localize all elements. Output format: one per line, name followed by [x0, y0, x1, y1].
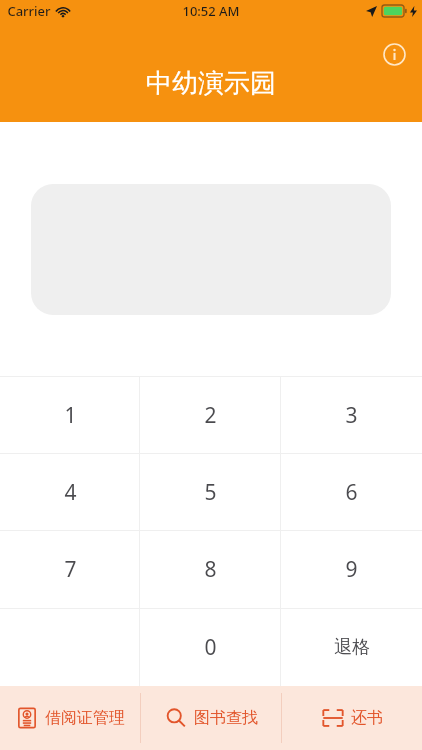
button[interactable]: 9 [281, 531, 422, 608]
staticText: 图书查找 [194, 708, 258, 728]
button[interactable]: Information [379, 39, 409, 69]
button[interactable]: 借阅证管理 [0, 686, 140, 750]
staticText: 10:52 AM [182, 2, 240, 20]
button[interactable]: 退格 [281, 609, 422, 686]
staticText: 2 [204, 401, 217, 430]
staticText: 7 [64, 555, 77, 584]
staticText: 还书 [351, 708, 383, 728]
button[interactable]: 图书查找 [141, 686, 281, 750]
button[interactable]: 0 [140, 609, 281, 686]
button[interactable]: 2 [140, 377, 281, 453]
staticText: 退格 [334, 636, 370, 659]
staticText: Carrier [7, 2, 51, 20]
button[interactable]: 6 [281, 454, 422, 530]
staticText: 中幼演示园 [146, 67, 276, 100]
staticText: 0 [204, 633, 217, 662]
button[interactable]: 5 [140, 454, 281, 530]
button[interactable]: 3 [281, 377, 422, 453]
staticText: 借阅证管理 [45, 708, 125, 728]
button[interactable]: 8 [140, 531, 281, 608]
button[interactable]: 还书 [282, 686, 422, 750]
staticText: 5 [204, 478, 217, 507]
staticText: 8 [204, 555, 217, 584]
button[interactable]: 7 [0, 531, 140, 608]
staticText: 4 [64, 478, 77, 507]
staticText: 1 [64, 401, 77, 430]
staticText: 3 [345, 401, 358, 430]
staticText: 9 [345, 555, 358, 584]
staticText: 6 [345, 478, 358, 507]
button[interactable]: 1 [0, 377, 140, 453]
button[interactable]: 4 [0, 454, 140, 530]
